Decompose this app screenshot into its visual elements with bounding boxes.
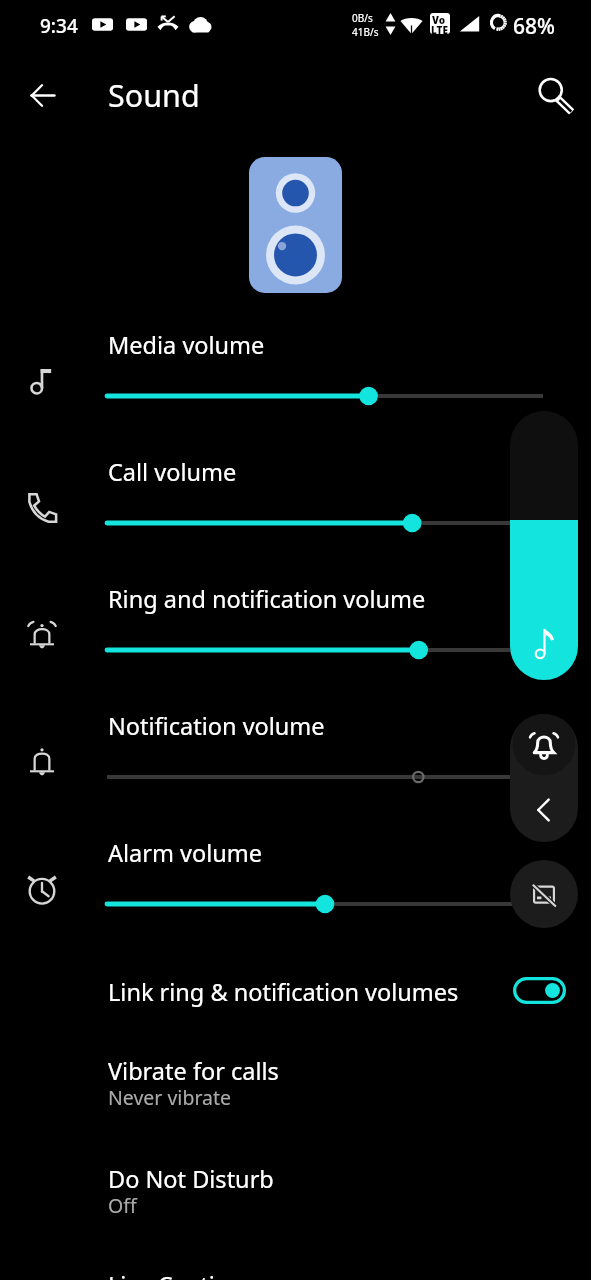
button[interactable] [0, 958, 591, 1030]
button[interactable]: Live caption off [510, 860, 578, 928]
button[interactable]: Expand volume panel [510, 778, 578, 842]
staticText: Call volume [108, 456, 237, 488]
staticText: 9:34 [40, 13, 78, 39]
staticText: Never vibrate [108, 1084, 232, 1111]
button[interactable] [0, 824, 591, 934]
staticText: Media volume [108, 329, 265, 361]
staticText: Off [108, 1192, 137, 1219]
staticText: Notification volume [108, 710, 325, 742]
button[interactable]: Ring mode [510, 714, 578, 778]
staticText: Do Not Disturb [108, 1163, 274, 1195]
staticText: 68% [513, 12, 555, 41]
button[interactable]: Media volume slider [510, 411, 578, 680]
button[interactable]: Link ring and notification volumes toggl… [508, 972, 571, 1009]
staticText: Vibrate for calls [108, 1055, 279, 1087]
button[interactable] [0, 697, 591, 807]
staticText: Vo [432, 13, 446, 27]
staticText: 41B/s [352, 25, 379, 39]
staticText: Sound [108, 74, 200, 116]
staticText: LTE [431, 23, 449, 34]
button[interactable] [0, 1144, 591, 1238]
staticText: 0B/s [352, 11, 373, 25]
button[interactable] [0, 1250, 591, 1280]
button[interactable]: Back [18, 71, 66, 119]
staticText: Live Caption [108, 1269, 244, 1280]
button[interactable] [0, 443, 591, 553]
button[interactable]: Search [531, 71, 579, 119]
button[interactable] [0, 570, 591, 680]
staticText: Link ring & notification volumes [108, 976, 459, 1008]
button[interactable] [0, 316, 591, 426]
staticText: Ring and notification volume [108, 583, 426, 615]
button[interactable] [0, 1036, 591, 1130]
staticText: Alarm volume [108, 837, 263, 869]
